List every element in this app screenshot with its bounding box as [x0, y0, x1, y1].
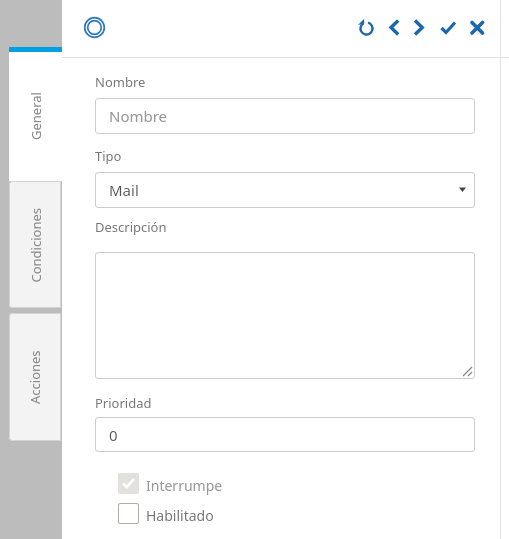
staticText: Descripción [95, 218, 167, 236]
button[interactable]: Mail [95, 172, 475, 208]
staticText: General [27, 92, 45, 140]
button[interactable] [80, 13, 109, 42]
button[interactable] [438, 16, 459, 38]
staticText: 0 [109, 425, 118, 445]
staticText: Condiciones [26, 207, 44, 282]
staticText: Habilitado [146, 506, 214, 525]
button[interactable] [409, 16, 428, 38]
staticText: Nombre [109, 106, 168, 126]
button[interactable] [467, 16, 488, 38]
button[interactable]: 0 [95, 417, 475, 452]
button[interactable]: Condiciones [9, 181, 61, 308]
staticText: Nombre [95, 73, 146, 91]
button[interactable] [385, 16, 404, 38]
button[interactable] [355, 16, 377, 38]
staticText: Mail [109, 180, 139, 200]
button[interactable]: Interrumpe [118, 473, 258, 495]
button[interactable]: Acciones [9, 313, 61, 441]
button[interactable]: Nombre [95, 98, 475, 134]
staticText: Tipo [95, 147, 122, 165]
staticText: Interrumpe [146, 476, 223, 495]
button[interactable] [95, 252, 475, 379]
button[interactable]: General [9, 52, 62, 181]
button[interactable]: Habilitado [118, 503, 258, 525]
staticText: Acciones [26, 350, 44, 404]
staticText: Prioridad [95, 394, 152, 412]
